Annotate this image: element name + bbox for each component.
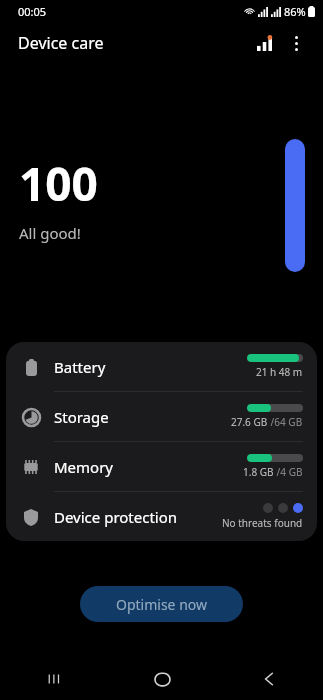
staticText: Storage [54,407,109,427]
button[interactable]: Recents [30,658,78,700]
staticText: /64 GB [268,415,303,429]
staticText: No threats found [222,516,303,530]
button[interactable]: Home [138,658,186,700]
staticText: Device protection [54,507,178,527]
staticText: Device care [18,32,104,54]
staticText: 21 h 48 m [256,365,303,379]
staticText: 100 [19,152,98,215]
staticText: 00:05 [18,4,47,19]
staticText: Battery [54,357,106,377]
button[interactable]: Device protection [6,492,317,541]
button[interactable]: Memory [6,442,317,492]
button[interactable]: Storage [6,392,317,442]
staticText: /4 GB [274,465,303,479]
staticText: 27.6 GB [231,415,268,429]
button[interactable]: Optimise now [80,586,243,622]
button[interactable]: More options [281,28,311,58]
button[interactable]: Diagnostics [249,28,279,58]
staticText: Memory [54,457,114,477]
staticText: 86% [284,4,306,19]
staticText: All good! [19,223,81,243]
button[interactable]: Back [245,658,293,700]
button[interactable]: Battery [6,342,317,392]
staticText: 1.8 GB [243,465,274,479]
staticText: Optimise now [116,595,207,614]
